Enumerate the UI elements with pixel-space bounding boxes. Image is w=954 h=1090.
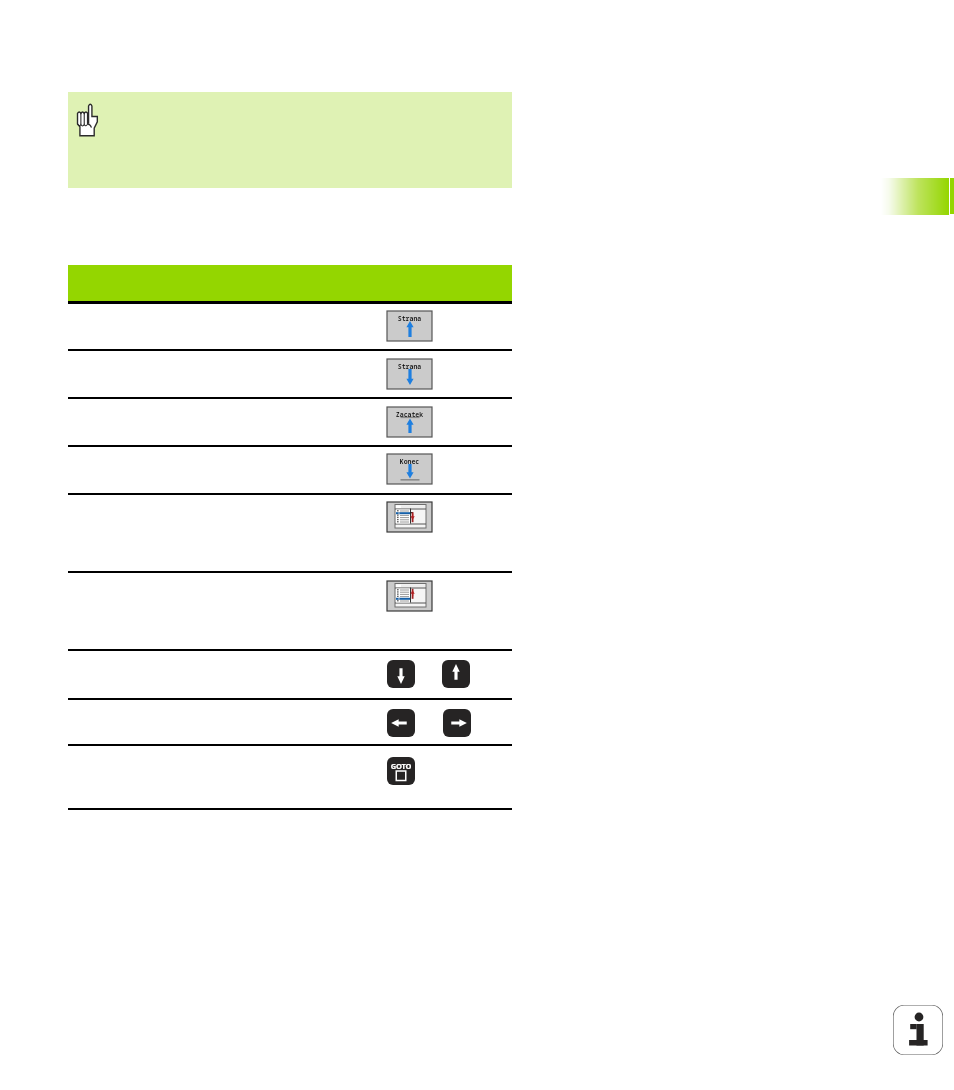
staticText: Strana [387, 362, 432, 371]
button[interactable]: Arrow right [443, 709, 471, 737]
button[interactable]: Strana [387, 311, 432, 341]
staticText: GOTO [387, 761, 415, 771]
button[interactable]: Previous window [387, 581, 432, 611]
staticText: Konec [387, 457, 432, 466]
button[interactable]: Next window [387, 502, 432, 532]
button[interactable]: Information [893, 1005, 943, 1055]
button[interactable]: Arrow down [387, 660, 415, 688]
button[interactable]: Konec [387, 454, 432, 484]
button[interactable]: Arrow left [387, 709, 415, 737]
button[interactable]: Zacatek [387, 407, 432, 437]
button[interactable]: GOTO [387, 757, 415, 785]
staticText: Strana [387, 314, 432, 323]
button[interactable]: Strana [387, 359, 432, 389]
button[interactable]: Arrow up [442, 660, 470, 688]
staticText: Zacatek [387, 410, 432, 419]
